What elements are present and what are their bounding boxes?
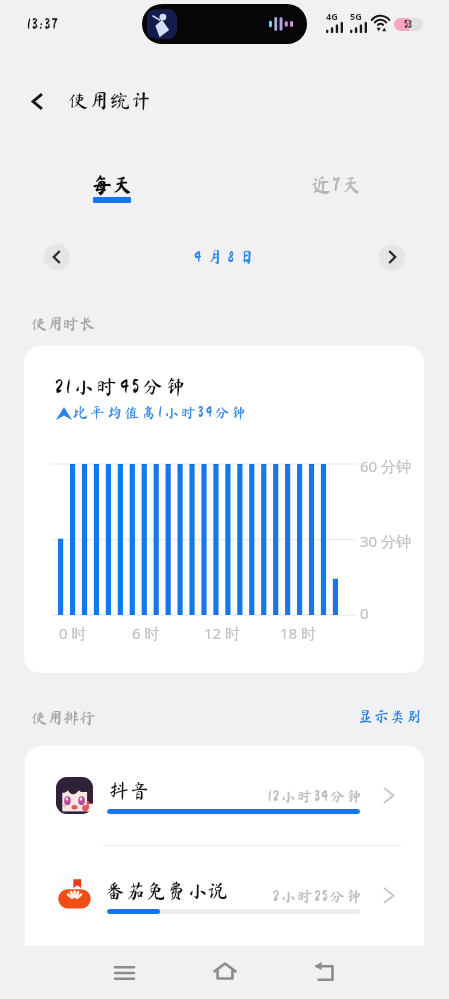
staticText: 比平均值高1小时34分钟: [73, 405, 249, 420]
staticText: 0: [360, 603, 369, 623]
staticText: 使用排行: [31, 710, 96, 726]
staticText: 60 分钟: [360, 456, 412, 476]
button[interactable]: Recent apps: [100, 948, 149, 997]
staticText: 使用时长: [31, 316, 96, 332]
button[interactable]: 显示类别: [358, 709, 423, 724]
staticText: 6 时: [132, 623, 160, 643]
staticText: 抖音: [109, 780, 150, 800]
staticText: 番茄免费小说: [105, 880, 228, 900]
button[interactable]: Next day: [379, 244, 405, 270]
staticText: 2小时25分钟: [273, 889, 364, 904]
button[interactable]: 近7天: [224, 174, 449, 214]
staticText: 4G: [326, 10, 338, 22]
staticText: 12 时: [204, 623, 241, 643]
staticText: 53: [404, 19, 413, 30]
button[interactable]: 番茄免费小说: [25, 846, 424, 946]
staticText: 近7天: [311, 174, 363, 194]
staticText: 21小时45分钟: [55, 376, 190, 396]
staticText: 0 时: [59, 623, 87, 643]
staticText: 使用统计: [68, 90, 152, 110]
staticText: 每天: [92, 174, 132, 194]
staticText: 显示类别: [358, 709, 423, 724]
button[interactable]: 每天: [0, 174, 224, 214]
staticText: 13:37: [27, 16, 59, 32]
staticText: 12小时34分钟: [268, 789, 364, 804]
button[interactable]: Home: [200, 946, 249, 995]
staticText: 4月8日: [194, 249, 261, 265]
button[interactable]: Previous day: [44, 244, 70, 270]
staticText: 5G: [350, 10, 362, 22]
button[interactable]: Back: [300, 948, 349, 997]
staticText: 18 时: [280, 623, 317, 643]
staticText: 30 分钟: [360, 531, 412, 551]
button[interactable]: 抖音: [25, 746, 424, 846]
button[interactable]: Back: [19, 83, 55, 119]
